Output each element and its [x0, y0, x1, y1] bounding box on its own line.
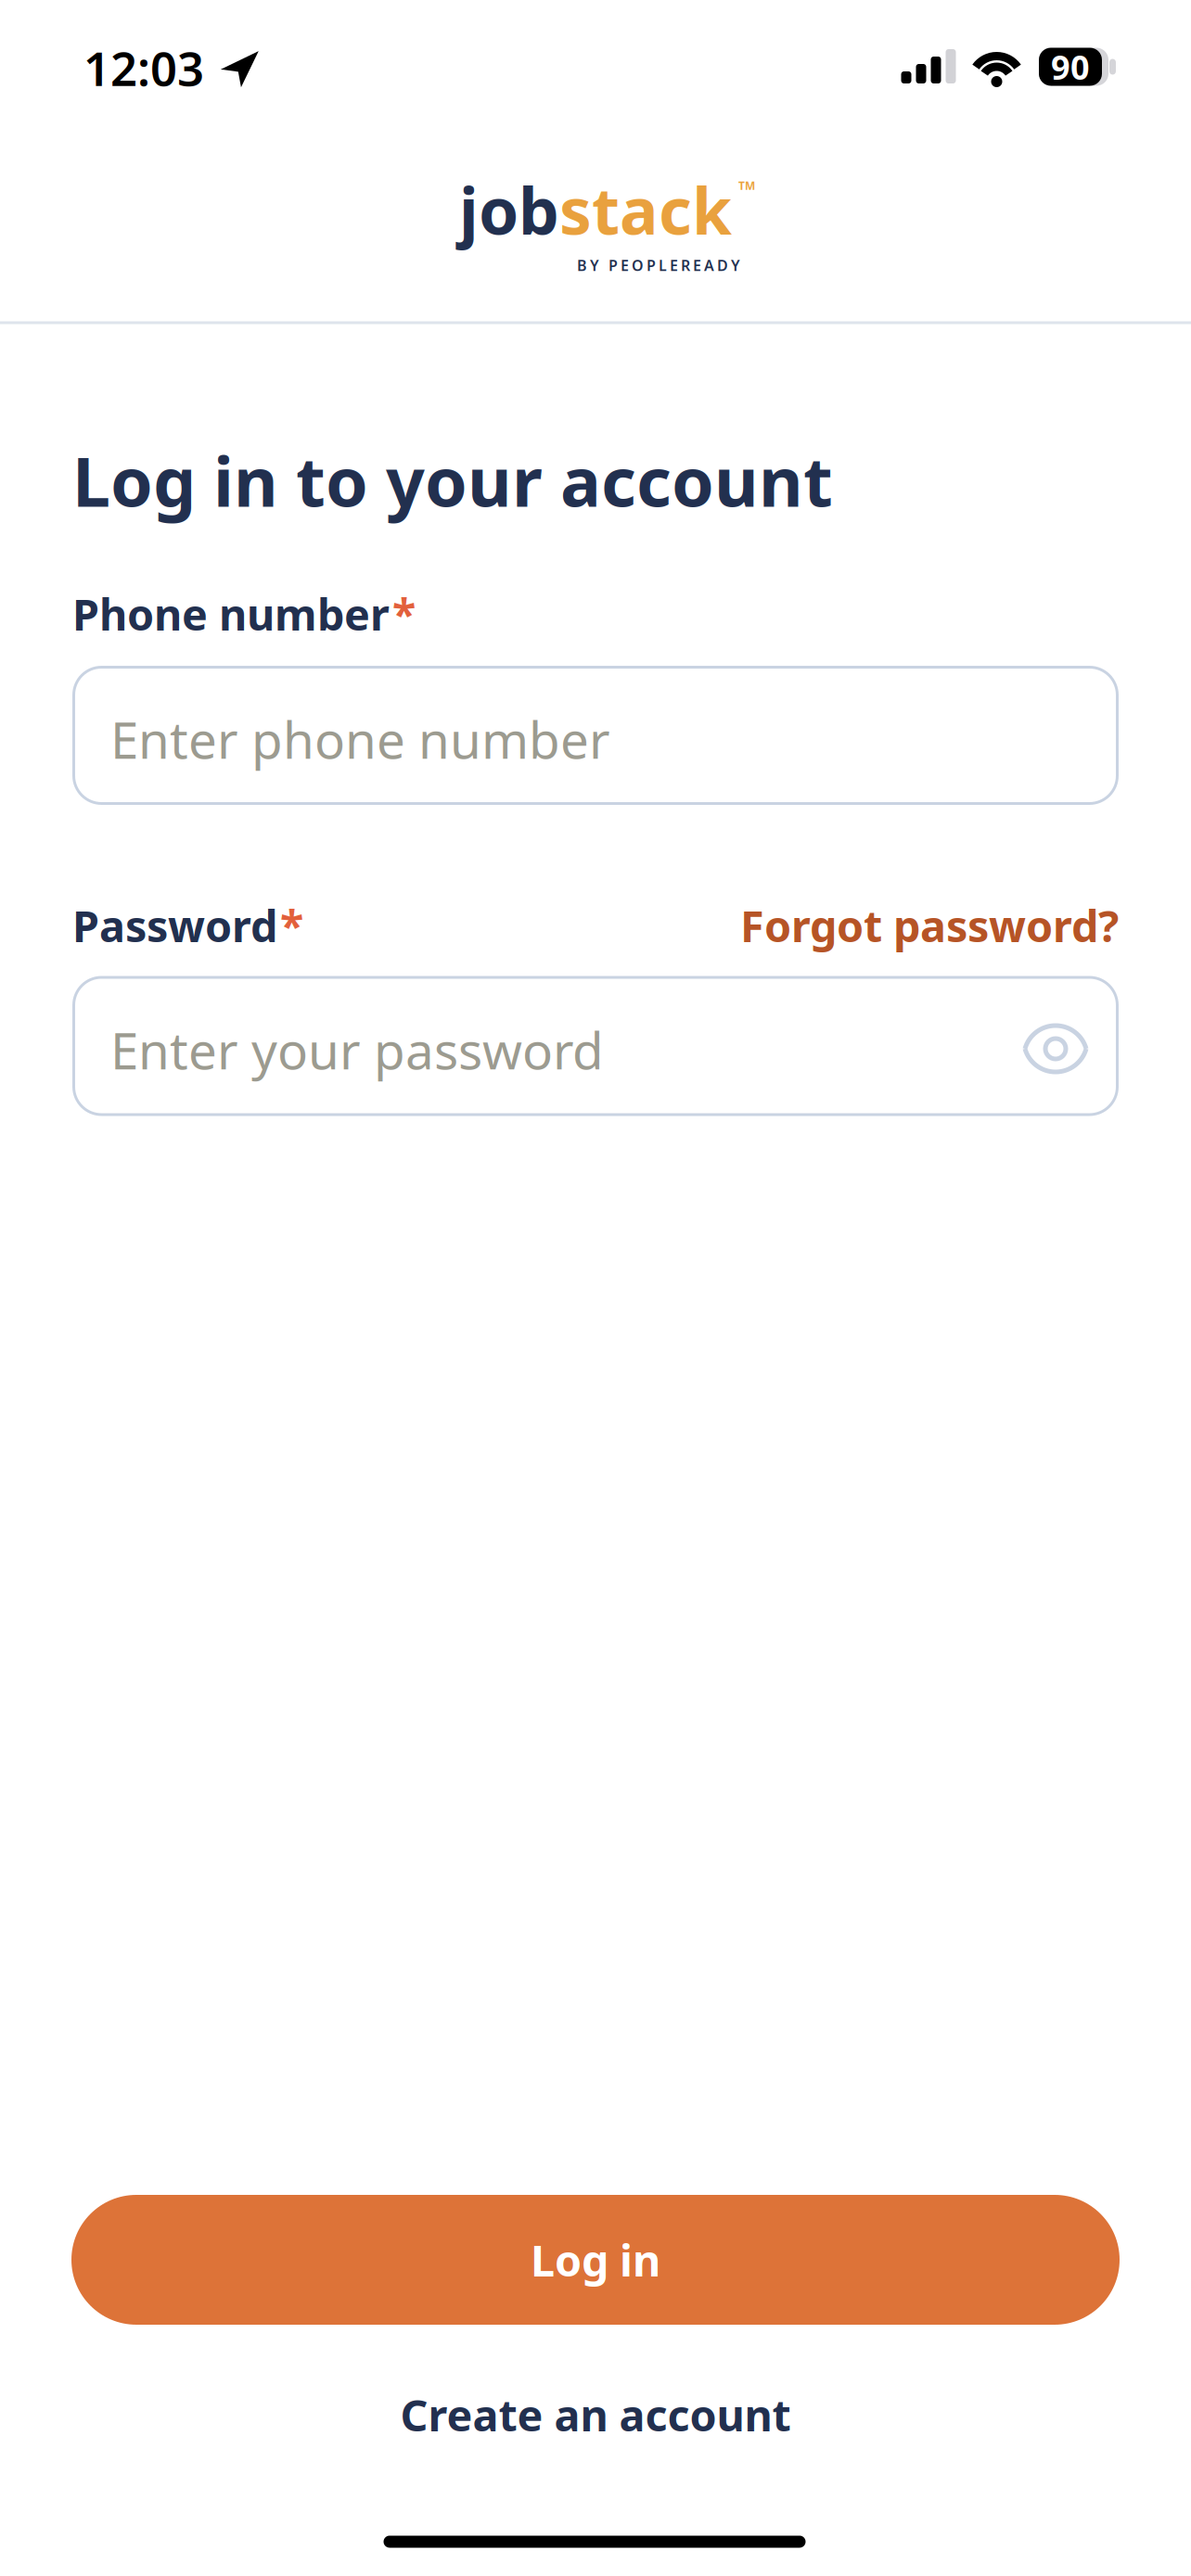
staticText: TM: [738, 178, 755, 193]
staticText: Log in to your account: [72, 435, 833, 525]
staticText: Enter your password: [110, 1016, 604, 1083]
staticText: job: [459, 167, 559, 252]
staticText: Password: [72, 897, 277, 954]
staticText: Forgot password?: [740, 897, 1119, 954]
textField[interactable]: Enter phone number: [110, 705, 1091, 773]
staticText: BY PEOPLEREADY: [577, 255, 740, 275]
staticText: *: [392, 585, 416, 643]
staticText: Enter phone number: [110, 705, 610, 773]
staticText: Create an account: [400, 2386, 791, 2443]
button[interactable]: Create an account: [400, 2386, 791, 2443]
button[interactable]: Log in: [71, 2195, 1120, 2325]
secureTextField[interactable]: Enter your password: [110, 1016, 1007, 1083]
button[interactable]: Show password: [1021, 1022, 1090, 1076]
button[interactable]: Forgot password?: [740, 897, 1119, 954]
staticText: Log in: [531, 2231, 660, 2289]
staticText: 90: [1051, 45, 1090, 89]
staticText: stack: [559, 167, 732, 252]
staticText: Phone number: [72, 585, 390, 643]
staticText: 12:03: [83, 37, 204, 99]
staticText: *: [280, 897, 303, 954]
